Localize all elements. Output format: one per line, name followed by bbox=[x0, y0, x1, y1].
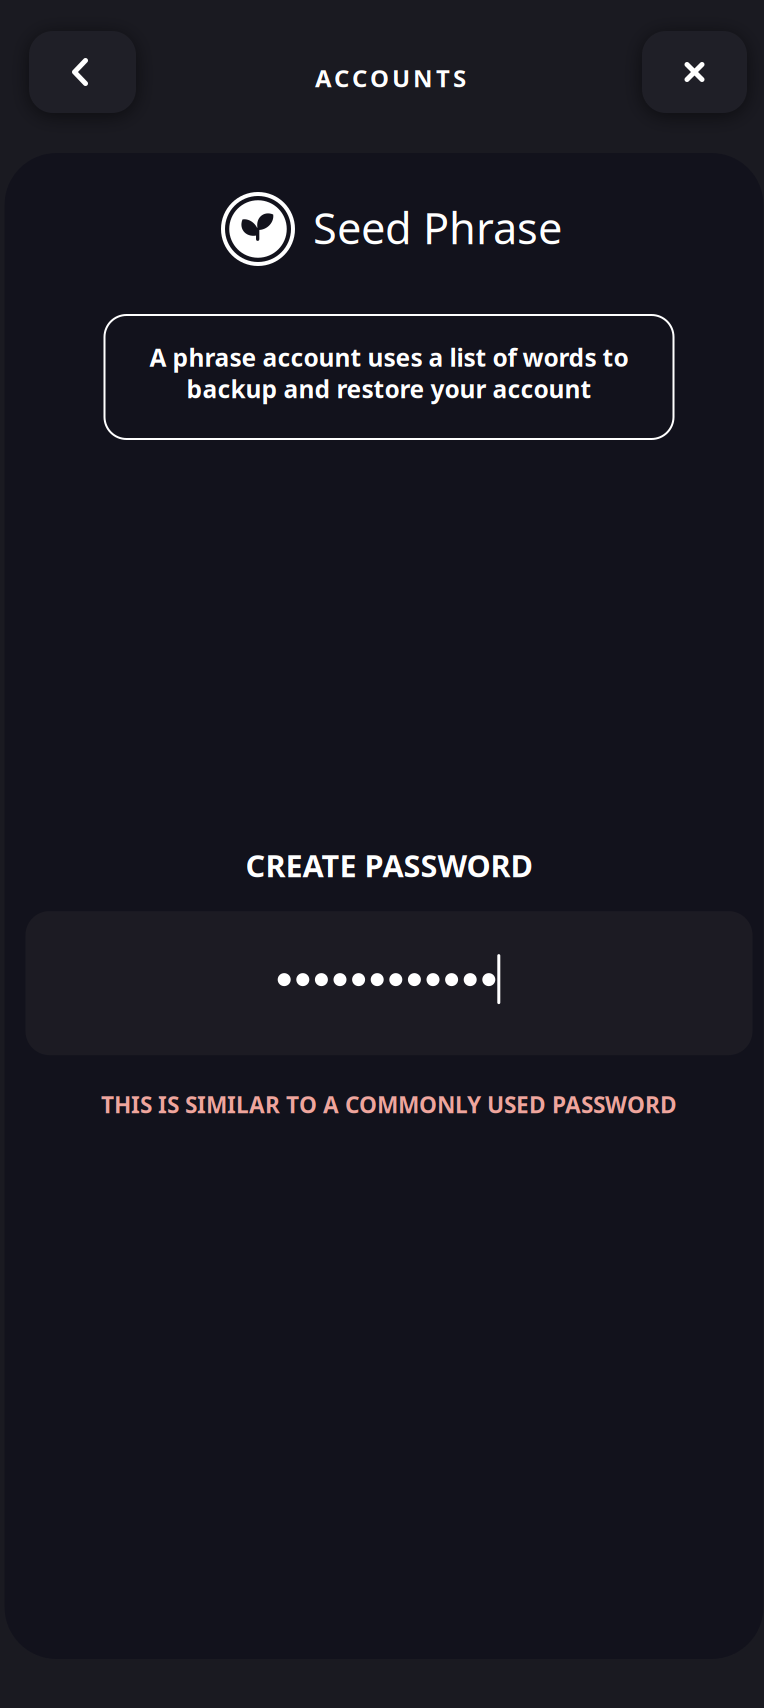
staticText: THIS IS SIMILAR TO A COMMONLY USED PASSW… bbox=[101, 1089, 677, 1120]
staticText: Seed Phrase bbox=[313, 198, 562, 257]
button[interactable]: Back bbox=[29, 31, 136, 113]
button[interactable]: Close bbox=[642, 31, 747, 113]
staticText: A phrase account uses a list of words to bbox=[149, 341, 628, 374]
staticText: ACCOUNTS bbox=[315, 62, 466, 94]
button[interactable]: Password bbox=[25, 911, 752, 1055]
staticText: backup and restore your account bbox=[186, 372, 591, 405]
staticText: CREATE PASSWORD bbox=[245, 844, 532, 886]
